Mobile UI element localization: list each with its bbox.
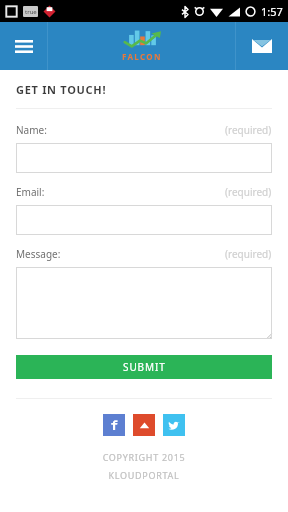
staticText: FALCON [122, 51, 162, 62]
button[interactable]: Facebook [103, 414, 125, 436]
button[interactable]: Text input [16, 143, 272, 173]
staticText: COPYRIGHT 2015 [16, 451, 272, 463]
button[interactable]: SUBMIT [16, 355, 272, 379]
staticText: (required) [225, 185, 272, 199]
button[interactable]: Open navigation menu [0, 22, 47, 70]
staticText: KLOUDPORTAL [16, 469, 272, 481]
button[interactable]: Google Plus [133, 414, 155, 436]
staticText: (required) [225, 247, 272, 261]
staticText: Email: [16, 185, 45, 199]
staticText: 1:57 [261, 4, 283, 19]
staticText: (required) [225, 123, 272, 137]
staticText: SUBMIT [123, 360, 166, 374]
staticText: GET IN TOUCH! [16, 82, 107, 97]
staticText: Name: [16, 123, 47, 137]
button[interactable]: Falcon home [48, 22, 235, 70]
button[interactable]: Twitter [163, 414, 185, 436]
staticText: true [25, 8, 37, 16]
button[interactable]: Email us [236, 22, 288, 70]
staticText: Message: [16, 247, 61, 261]
button[interactable]: Text input [16, 267, 272, 339]
button[interactable]: Text input [16, 205, 272, 235]
